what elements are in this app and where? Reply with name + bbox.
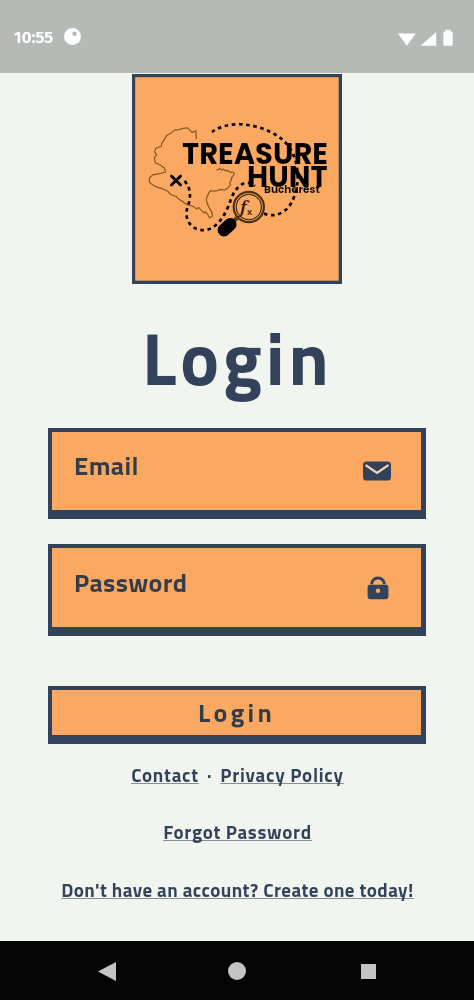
staticText: Forgot Password — [163, 817, 312, 846]
staticText: Email — [74, 446, 139, 486]
other: Password — [365, 574, 391, 602]
staticText: Don't have an account? Create one today! — [61, 875, 414, 904]
staticText: · — [199, 761, 220, 788]
staticText: Login — [198, 693, 276, 733]
staticText: Password — [74, 563, 188, 603]
button[interactable]: Recent apps — [344, 947, 392, 995]
button[interactable]: Don't have an account? Create one today! — [61, 875, 414, 904]
staticText: Bucharest — [264, 182, 320, 197]
button[interactable]: Password — [48, 544, 426, 636]
button[interactable]: Home — [213, 947, 261, 995]
button[interactable]: Contact — [131, 760, 199, 789]
staticText: x — [247, 205, 253, 217]
staticText: HUNT — [247, 157, 328, 198]
staticText: 10:55 — [14, 27, 54, 47]
button[interactable]: Forgot Password — [163, 817, 312, 846]
button[interactable]: Email — [48, 428, 426, 519]
staticText: f — [240, 195, 247, 218]
staticText: Contact — [131, 760, 199, 789]
button[interactable]: Login — [48, 686, 426, 744]
staticText: Login — [142, 302, 333, 413]
button[interactable]: Back — [83, 947, 131, 995]
staticText: TREASURE — [182, 134, 328, 175]
staticText: Privacy Policy — [220, 760, 344, 789]
other: Email — [363, 459, 391, 483]
button[interactable]: Privacy Policy — [220, 760, 344, 789]
